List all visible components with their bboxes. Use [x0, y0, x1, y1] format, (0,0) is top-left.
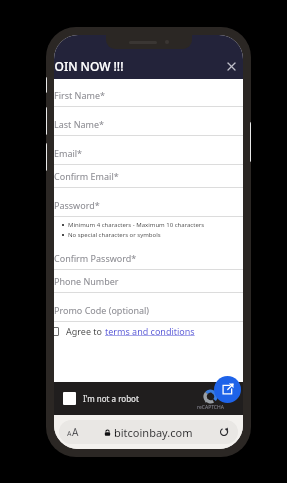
button[interactable]: terms and conditions	[105, 325, 195, 337]
staticText: Promo Code (optional)	[54, 304, 150, 316]
button[interactable]: Confirm Email*	[54, 165, 243, 187]
button[interactable]: I'm not a robot	[63, 392, 76, 405]
button[interactable]: Last Name*	[54, 113, 243, 135]
button[interactable]: Password*	[54, 194, 243, 216]
staticText: Password*	[54, 199, 100, 211]
staticText: Phone Number	[54, 275, 119, 287]
button[interactable]: Text size	[59, 420, 238, 444]
staticText: I'm not a robot	[83, 393, 139, 404]
staticText: First Name*	[54, 89, 105, 101]
button[interactable]: First Name*	[54, 84, 243, 106]
button[interactable]: Confirm Password*	[54, 247, 243, 269]
button[interactable]: Agree to	[54, 322, 243, 340]
staticText: Last Name*	[54, 118, 105, 130]
staticText: Agree to	[66, 325, 105, 337]
staticText: bitcoinbay.com	[114, 425, 193, 440]
staticText: JOIN NOW !!!	[54, 58, 124, 74]
staticText: Email*	[54, 147, 83, 159]
staticText: Minimum 4 characters - Maximum 10 charac…	[68, 221, 205, 229]
button[interactable]: Close	[223, 58, 239, 74]
staticText: Confirm Email*	[54, 170, 119, 182]
staticText: A	[72, 425, 79, 439]
staticText: No special characters or symbols	[68, 231, 161, 239]
button[interactable]: Open in new window	[214, 376, 241, 403]
button[interactable]: Promo Code (optional)	[54, 299, 243, 321]
button[interactable]: Email*	[54, 142, 243, 164]
staticText: A	[67, 429, 72, 439]
button[interactable]: Reload	[218, 426, 230, 438]
staticText: reCAPTCHA	[197, 404, 224, 411]
button[interactable]: Phone Number	[54, 270, 243, 292]
button[interactable]: Text size	[67, 425, 79, 439]
staticText: Confirm Password*	[54, 252, 137, 264]
